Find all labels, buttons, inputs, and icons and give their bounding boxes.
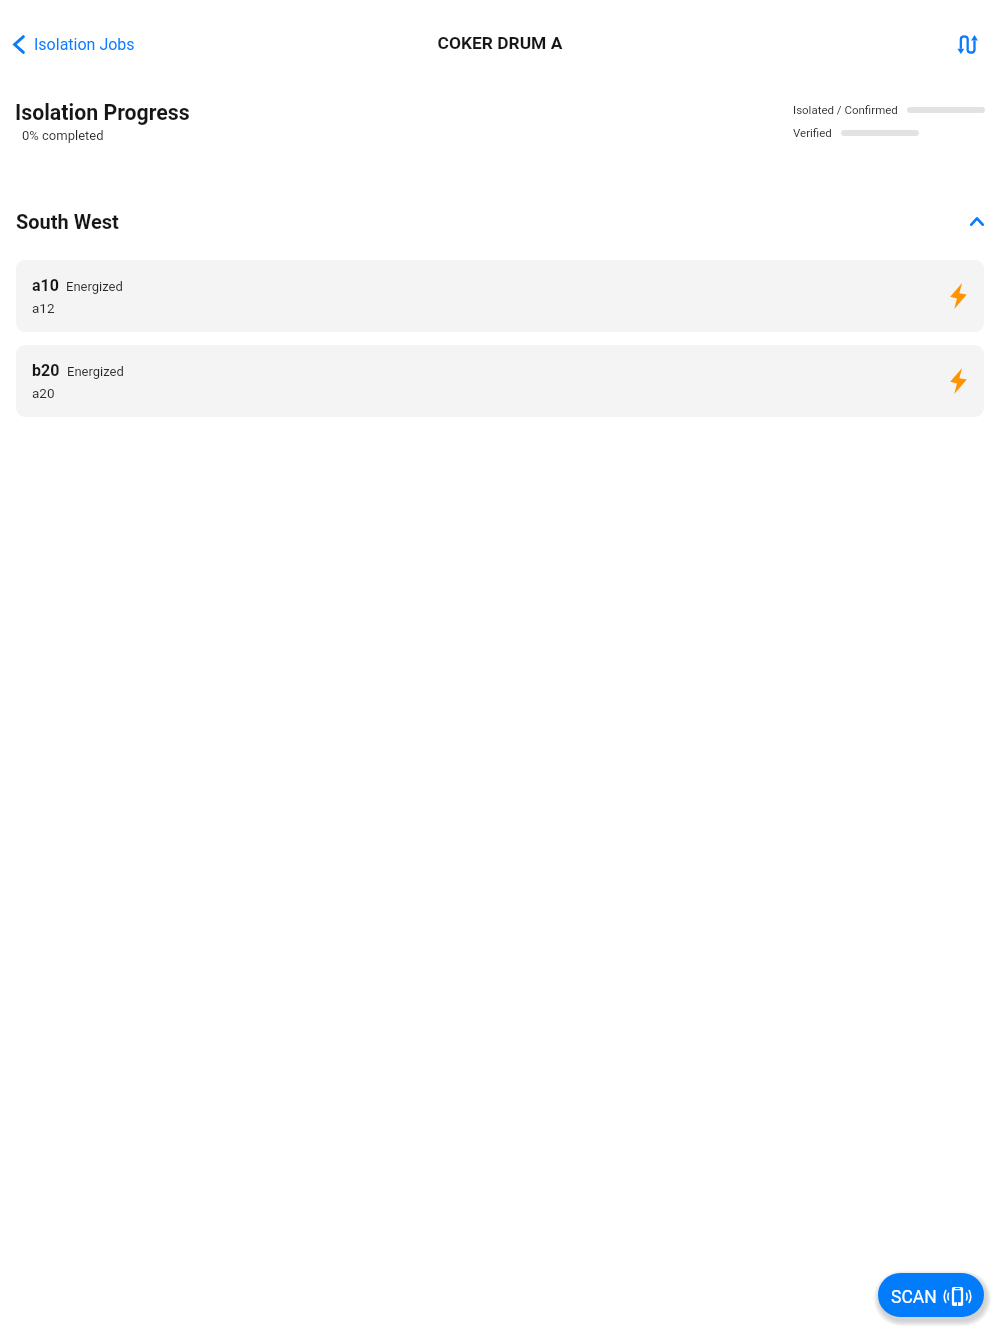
button[interactable]: Sort [948, 24, 988, 64]
staticText: a10 [32, 276, 59, 295]
staticText: COKER DRUM A [0, 33, 1000, 53]
staticText: 0% completed [22, 128, 104, 143]
staticText: SCAN [891, 1287, 937, 1308]
button[interactable]: South West [0, 206, 1000, 237]
staticText: Isolation Jobs [34, 35, 135, 54]
staticText: Energized [66, 279, 123, 294]
staticText: South West [16, 210, 119, 233]
button[interactable]: Isolation Jobs [8, 31, 141, 58]
button[interactable]: SCAN [878, 1273, 984, 1317]
staticText: Verified [793, 126, 832, 139]
staticText: Energized [67, 364, 124, 379]
staticText: a12 [32, 300, 55, 316]
staticText: Isolation Progress [15, 100, 190, 125]
button[interactable]: a10 [16, 260, 984, 332]
staticText: b20 [32, 361, 60, 380]
button[interactable]: b20 [16, 345, 984, 417]
staticText: a20 [32, 385, 55, 401]
staticText: Isolated / Confirmed [793, 103, 898, 116]
